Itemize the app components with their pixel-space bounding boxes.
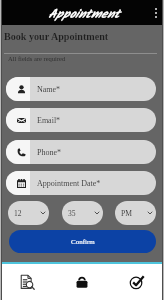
button[interactable]: PM: [115, 201, 156, 225]
staticText: Name*: [37, 85, 61, 94]
staticText: Email*: [37, 116, 61, 125]
staticText: Phone*: [37, 148, 61, 157]
button[interactable]: Phone*: [6, 140, 156, 164]
button[interactable]: Lock: [54, 264, 109, 300]
button[interactable]: 35: [62, 201, 103, 225]
staticText: 35: [68, 209, 76, 217]
button[interactable]: Appointments: [109, 264, 164, 300]
button[interactable]: Email*: [6, 108, 156, 132]
staticText: PM: [121, 209, 132, 217]
staticText: All fields are required: [8, 55, 66, 62]
button[interactable]: Confirm: [9, 230, 156, 253]
button[interactable]: 12: [8, 201, 49, 225]
staticText: Appointment Date*: [37, 179, 101, 188]
staticText: Appointment: [48, 5, 120, 25]
button[interactable]: More options: [147, 0, 164, 25]
button[interactable]: Name*: [6, 77, 156, 101]
staticText: 12: [14, 209, 22, 217]
button[interactable]: Search documents: [0, 264, 54, 300]
staticText: Book your Appointment: [4, 31, 109, 42]
staticText: Confirm: [71, 238, 95, 246]
button[interactable]: Appointment Date*: [6, 171, 156, 195]
